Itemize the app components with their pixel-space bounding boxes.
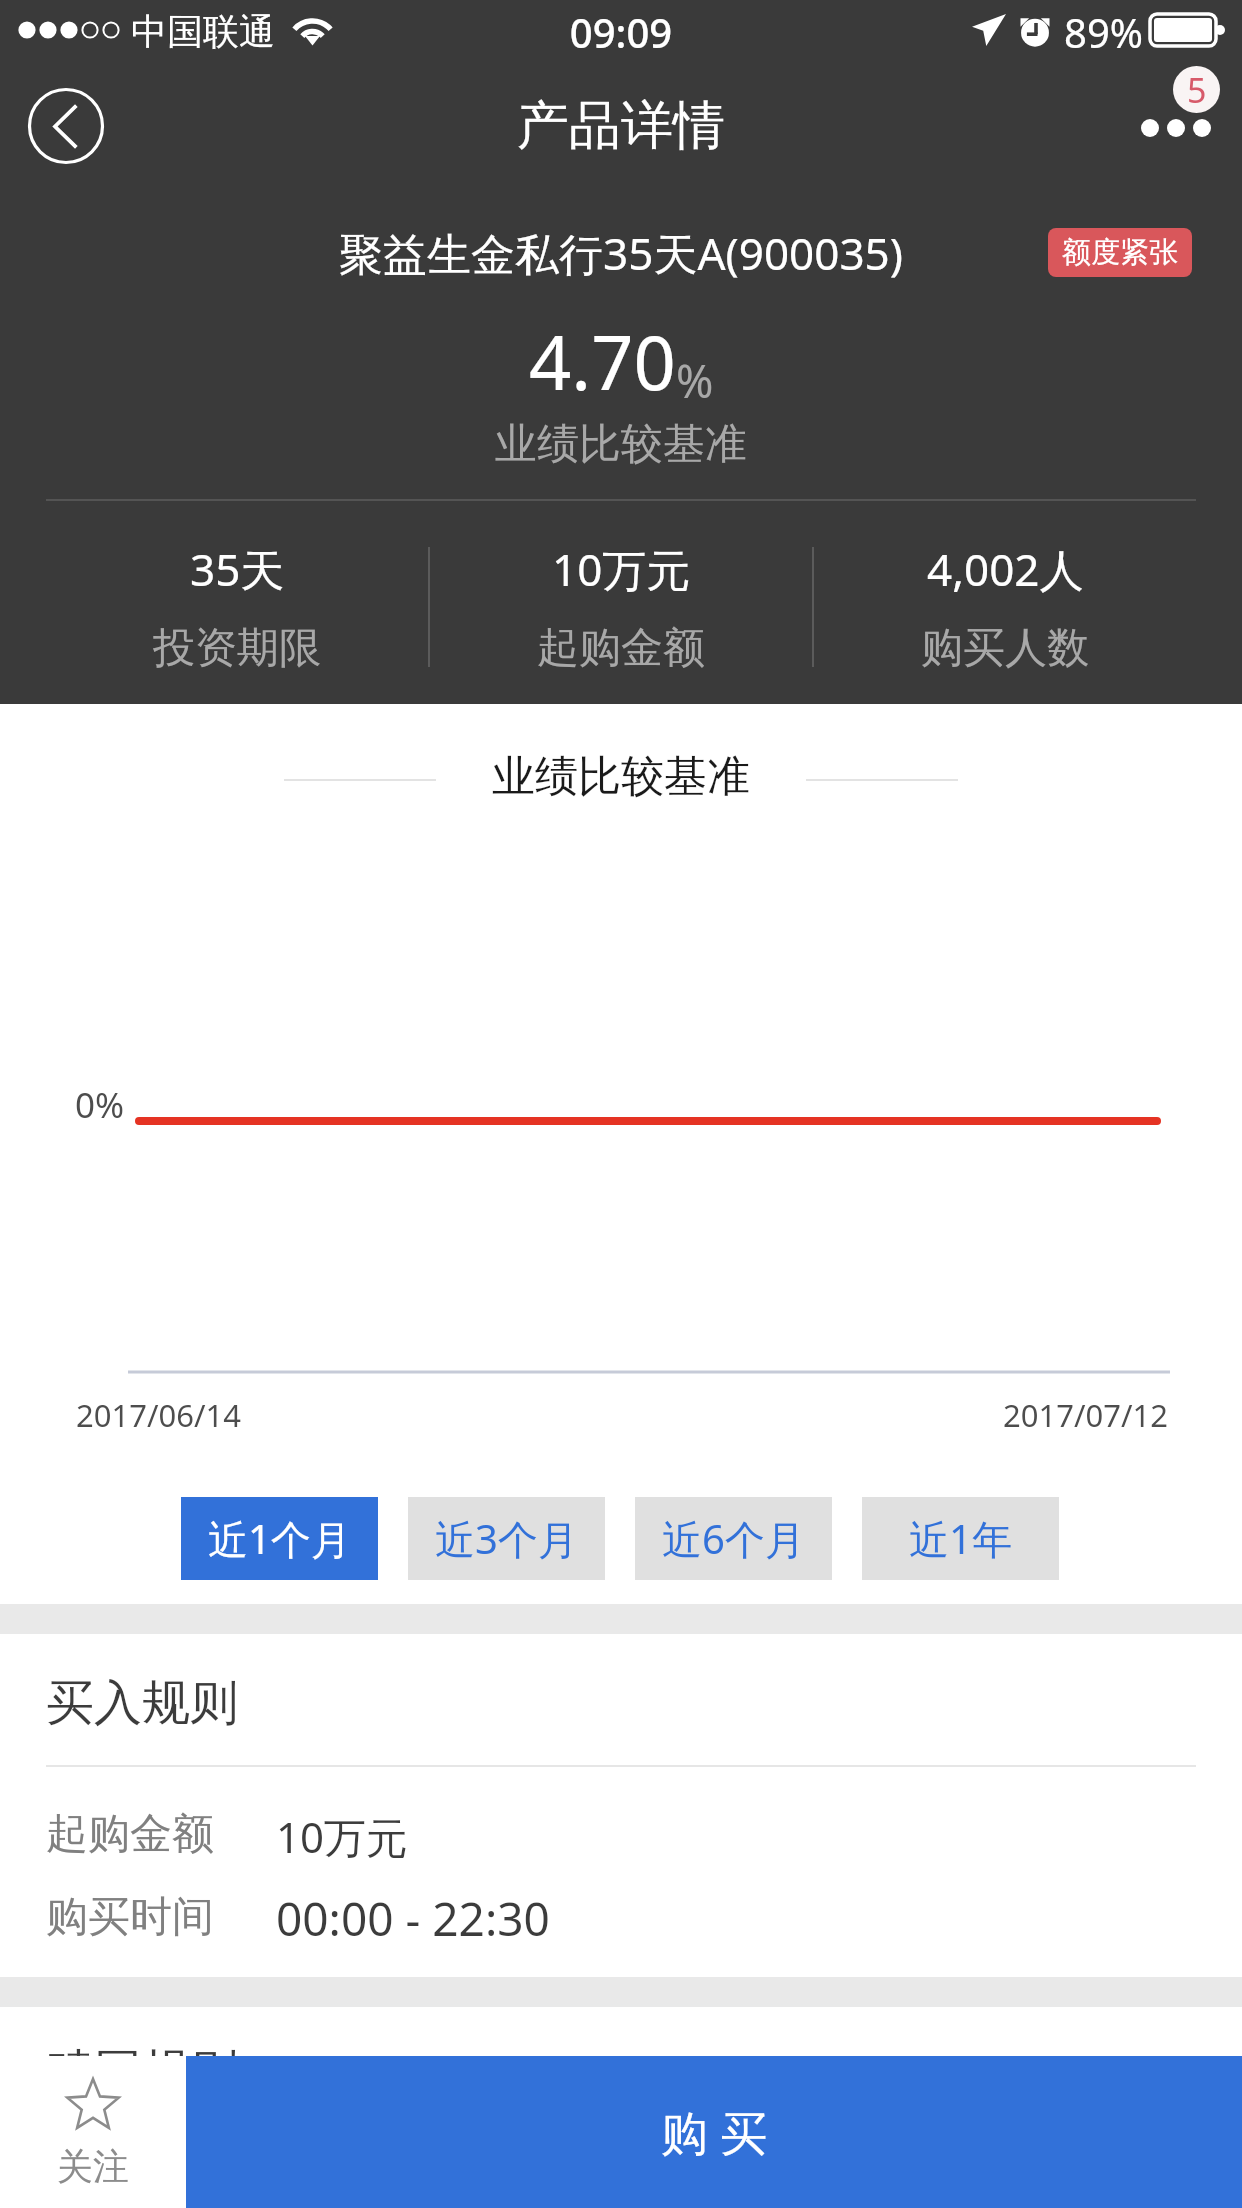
button[interactable]: Back	[20, 80, 112, 172]
button[interactable]: More options	[1122, 60, 1242, 190]
staticText: 4,002人	[927, 539, 1084, 599]
staticText: 近6个月	[662, 1511, 805, 1566]
staticText: 赎回规则	[46, 2042, 238, 2102]
staticText: 2017/07/12	[1003, 1394, 1168, 1436]
staticText: 10万元	[276, 1808, 409, 1865]
staticText: 关注	[0, 2144, 186, 2189]
staticText: 业绩比较基准	[0, 418, 1242, 471]
staticText: 购 买	[661, 2100, 768, 2164]
staticText: 00:00 - 22:30	[276, 1887, 550, 1950]
staticText: 近3个月	[435, 1511, 578, 1566]
staticText: 产品详情	[0, 93, 1242, 159]
staticText: 10万元	[552, 539, 691, 599]
button[interactable]: 关注	[0, 2056, 186, 2208]
staticText: 89%	[1064, 5, 1143, 59]
button[interactable]: 近6个月	[635, 1497, 832, 1580]
staticText: 额度紧张	[1062, 234, 1178, 271]
staticText: 近1年	[909, 1511, 1012, 1566]
staticText: %	[676, 350, 714, 411]
staticText: 中国联通	[131, 9, 275, 54]
staticText: 起购金额	[537, 622, 705, 675]
staticText: 35天	[190, 539, 285, 599]
staticText: 2017/06/14	[76, 1394, 241, 1436]
staticText: 投资期限	[153, 622, 321, 675]
staticText: 4.70	[529, 311, 676, 412]
staticText: 起购金额	[46, 1808, 214, 1861]
staticText: 购买时间	[46, 1891, 214, 1944]
staticText: 5	[1187, 67, 1207, 113]
button[interactable]: 近1年	[862, 1497, 1059, 1580]
staticText: 购买人数	[921, 622, 1089, 675]
staticText: 近1个月	[208, 1511, 351, 1566]
staticText: 09:09	[0, 5, 1242, 59]
staticText: 业绩比较基准	[492, 750, 750, 804]
button[interactable]: 近3个月	[408, 1497, 605, 1580]
staticText: 聚益生金私行35天A(900035)	[0, 223, 1242, 283]
button[interactable]: 购 买	[186, 2056, 1242, 2208]
button[interactable]: 近1个月	[181, 1497, 378, 1580]
staticText: 买入规则	[46, 1673, 238, 1733]
staticText: 0%	[75, 1081, 125, 1129]
